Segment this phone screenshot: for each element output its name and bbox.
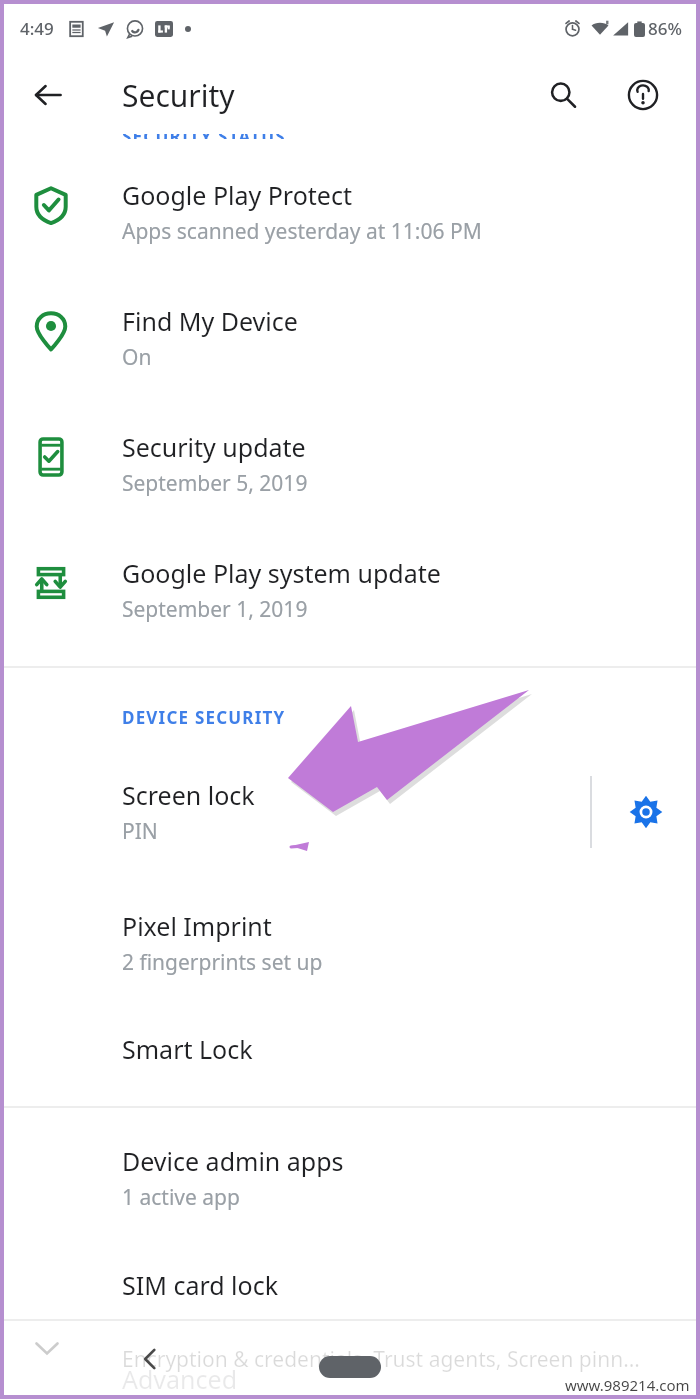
staticText: Find My Device (122, 304, 298, 338)
staticText: Smart Lock (122, 1032, 253, 1066)
staticText: SECURITY STATUS (122, 134, 286, 139)
staticText: PIN (122, 817, 158, 846)
staticText: www.989214.com (565, 1375, 690, 1395)
staticText: Security update (122, 430, 306, 464)
button[interactable]: Screen lock (0, 778, 590, 846)
button[interactable]: Search (538, 70, 588, 120)
staticText: Encryption & credentials, Trust agents, … (122, 1345, 640, 1374)
staticText: Security (122, 75, 235, 116)
button[interactable]: Google Play system update (0, 556, 700, 624)
staticText: September 1, 2019 (122, 595, 308, 624)
staticText: DEVICE SECURITY (122, 706, 286, 729)
button[interactable]: Device admin apps (0, 1144, 700, 1212)
button[interactable]: Pixel Imprint (0, 909, 700, 977)
button[interactable]: Help (618, 70, 668, 120)
button[interactable]: Smart Lock (0, 1032, 700, 1066)
staticText: Advanced (122, 1362, 238, 1396)
button[interactable]: Google Play Protect (0, 178, 700, 246)
button[interactable]: Back (126, 1335, 174, 1383)
button[interactable]: Security update (0, 430, 700, 498)
staticText: 1 active app (122, 1183, 240, 1212)
staticText: Screen lock (122, 778, 255, 812)
staticText: On (122, 343, 152, 372)
staticText: SIM card lock (122, 1268, 279, 1302)
staticText: Google Play Protect (122, 178, 352, 212)
staticText: Pixel Imprint (122, 909, 272, 943)
button[interactable]: Advanced (0, 1362, 700, 1396)
button[interactable]: Screen lock settings (592, 767, 700, 857)
staticText: Device admin apps (122, 1144, 344, 1178)
staticText: 2 fingerprints set up (122, 948, 323, 977)
button[interactable]: Home (319, 1356, 381, 1378)
staticText: Google Play system update (122, 556, 441, 590)
staticText: 86% (648, 17, 682, 40)
button[interactable]: SIM card lock (0, 1268, 700, 1302)
staticText: 4:49 (20, 17, 54, 40)
button[interactable]: Find My Device (0, 304, 700, 372)
button[interactable]: Back (22, 69, 74, 121)
staticText: September 5, 2019 (122, 469, 308, 498)
staticText: Apps scanned yesterday at 11:06 PM (122, 217, 482, 246)
